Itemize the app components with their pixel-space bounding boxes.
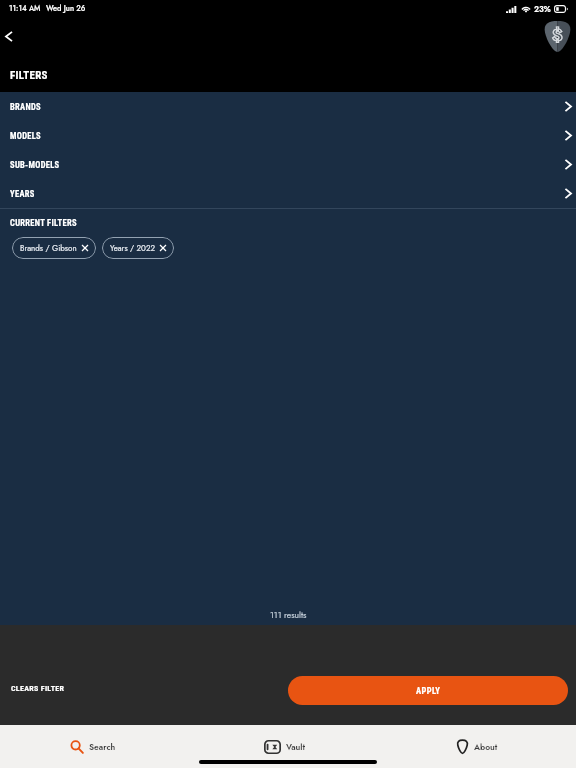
button[interactable]: YEARS — [0, 179, 576, 208]
button[interactable]: Back — [0, 20, 26, 52]
staticText: 111 results — [270, 609, 307, 621]
button[interactable]: Search — [64, 735, 122, 759]
staticText: BRANDS — [10, 102, 41, 112]
staticText: 11:14 AM — [9, 3, 41, 14]
staticText: YEARS — [10, 189, 35, 199]
button[interactable]: About — [450, 734, 504, 759]
staticText: Wed Jun 26 — [46, 3, 86, 14]
staticText: Brands / Gibson — [20, 242, 77, 254]
button[interactable]: CLEARS FILTER — [11, 684, 65, 693]
button[interactable]: Vault — [258, 735, 312, 759]
staticText: SUB-MODELS — [10, 160, 60, 170]
button[interactable]: Account — [543, 21, 572, 52]
button[interactable]: Brands / Gibson — [12, 237, 96, 259]
staticText: FILTERS — [10, 69, 48, 82]
staticText: About — [474, 741, 498, 753]
button[interactable]: Years / 2022 — [102, 237, 174, 259]
staticText: APPLY — [416, 686, 441, 696]
button[interactable]: BRANDS — [0, 92, 576, 121]
staticText: MODELS — [10, 131, 42, 141]
staticText: $ — [552, 23, 563, 48]
staticText: Search — [89, 741, 116, 753]
staticText: Vault — [286, 741, 306, 753]
staticText: CURRENT FILTERS — [10, 218, 77, 228]
button[interactable]: APPLY — [288, 676, 568, 705]
button[interactable]: SUB-MODELS — [0, 150, 576, 179]
staticText: 23% — [534, 3, 551, 15]
button[interactable]: MODELS — [0, 121, 576, 150]
staticText: Years / 2022 — [110, 242, 155, 254]
